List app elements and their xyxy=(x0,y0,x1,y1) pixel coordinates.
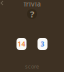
button[interactable]: Back xyxy=(0,0,3,5)
staticText: ? xyxy=(30,8,34,20)
staticText: score xyxy=(25,63,39,70)
staticText: Trivia xyxy=(23,0,41,8)
staticText: 14 xyxy=(17,40,25,48)
button[interactable]: 14 xyxy=(16,38,26,50)
staticText: 3 xyxy=(40,40,44,48)
button[interactable]: 3 xyxy=(37,38,47,50)
